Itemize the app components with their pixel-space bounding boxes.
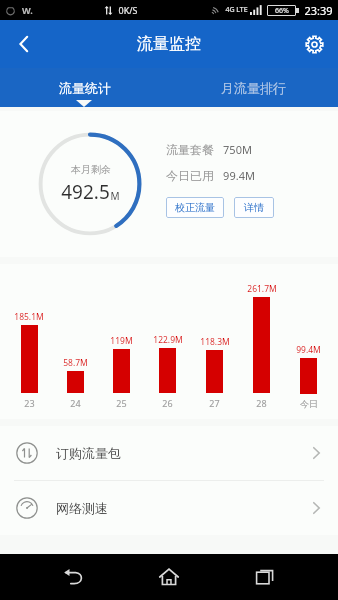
staticText: 流量统计 bbox=[59, 80, 111, 96]
button[interactable]: 校正流量 bbox=[166, 197, 224, 218]
staticText: 23 bbox=[24, 397, 35, 409]
staticText: M bbox=[110, 189, 120, 203]
staticText: 校正流量 bbox=[175, 201, 215, 214]
staticText: W. bbox=[22, 4, 33, 16]
staticText: 27 bbox=[209, 397, 220, 409]
staticText: 185.1M bbox=[14, 311, 44, 323]
staticText: 今日 bbox=[300, 398, 318, 409]
button[interactable]: 网络测速 bbox=[0, 481, 338, 535]
staticText: 24 bbox=[70, 397, 81, 409]
button[interactable]: Back bbox=[50, 554, 96, 600]
staticText: 99.4M bbox=[296, 344, 321, 356]
staticText: 今日已用 bbox=[166, 168, 214, 183]
staticText: 4G LTE bbox=[225, 5, 248, 15]
staticText: 23:39 bbox=[304, 3, 333, 18]
staticText: 订购流量包 bbox=[56, 445, 121, 461]
button[interactable]: Settings bbox=[290, 20, 338, 68]
staticText: 流量监控 bbox=[137, 34, 201, 54]
staticText: 本月剩余 bbox=[71, 163, 111, 176]
staticText: 492.5 bbox=[61, 179, 110, 205]
staticText: 25 bbox=[116, 397, 127, 409]
staticText: 66% bbox=[275, 6, 289, 16]
staticText: 122.9M bbox=[153, 334, 183, 346]
staticText: 流量套餐 bbox=[166, 142, 214, 157]
staticText: 网络测速 bbox=[56, 500, 108, 516]
button[interactable]: 月流量排行 bbox=[169, 68, 338, 107]
button[interactable]: Home bbox=[146, 554, 192, 600]
staticText: 月流量排行 bbox=[221, 80, 286, 96]
staticText: 99.4M bbox=[223, 168, 255, 183]
button[interactable]: Recents bbox=[242, 554, 288, 600]
staticText: 0K/S bbox=[118, 4, 138, 16]
button[interactable]: Back bbox=[0, 20, 48, 68]
staticText: 750M bbox=[223, 142, 252, 157]
staticText: 261.7M bbox=[247, 283, 277, 295]
staticText: 详情 bbox=[244, 201, 264, 214]
staticText: 119M bbox=[110, 335, 133, 347]
staticText: 28 bbox=[256, 397, 267, 409]
staticText: 26 bbox=[162, 397, 173, 409]
button[interactable]: 流量统计 bbox=[0, 68, 169, 107]
staticText: 58.7M bbox=[63, 357, 88, 369]
staticText: 118.3M bbox=[200, 336, 230, 348]
button[interactable]: 详情 bbox=[234, 197, 274, 218]
button[interactable]: 订购流量包 bbox=[0, 426, 338, 480]
